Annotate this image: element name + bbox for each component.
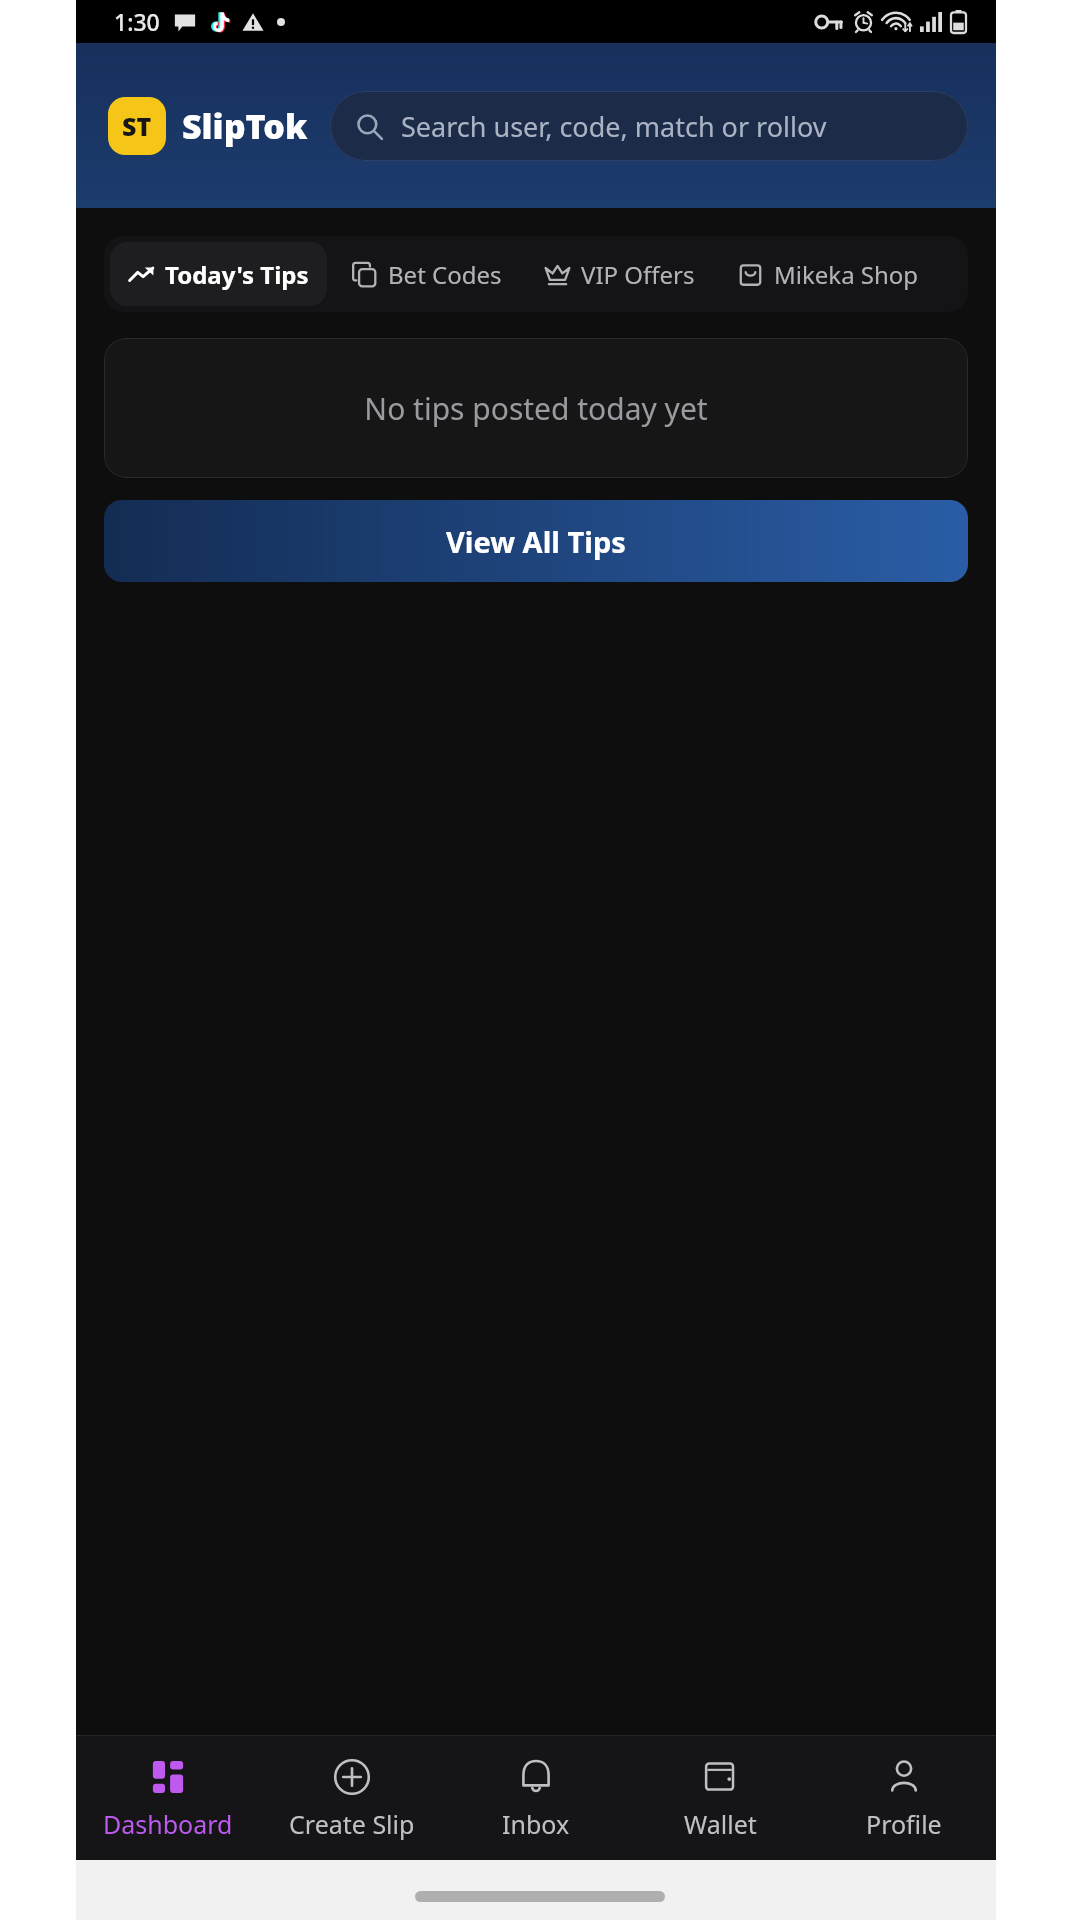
staticText: Today's Tips — [165, 258, 309, 291]
button[interactable]: Today's Tips — [110, 242, 327, 306]
staticText: Create Slip — [289, 1807, 415, 1841]
staticText: No tips posted today yet — [364, 388, 708, 429]
button[interactable]: Mikeka Shop — [719, 242, 937, 306]
staticText: ST — [122, 109, 152, 143]
staticText: Search user, code, match or rollov — [401, 108, 827, 145]
button[interactable]: Dashboard — [76, 1736, 260, 1860]
staticText: SlipTok — [182, 103, 308, 149]
button[interactable]: View All Tips — [104, 500, 968, 582]
staticText: 1:30 — [114, 6, 160, 37]
staticText: Wallet — [684, 1807, 757, 1841]
button[interactable]: Bet Codes — [333, 242, 520, 306]
button[interactable]: Profile — [812, 1736, 996, 1860]
button[interactable]: ST — [108, 97, 166, 155]
button[interactable]: VIP Offers — [526, 242, 713, 306]
button[interactable]: Search user, code, match or rollov — [330, 91, 968, 161]
button[interactable]: Inbox — [444, 1736, 628, 1860]
button[interactable]: Wallet — [628, 1736, 812, 1860]
staticText: Bet Codes — [388, 258, 502, 291]
button[interactable]: Create Slip — [260, 1736, 444, 1860]
staticText: Dashboard — [103, 1807, 233, 1841]
staticText: Inbox — [502, 1807, 570, 1841]
staticText: View All Tips — [446, 522, 626, 561]
staticText: VIP Offers — [581, 258, 695, 291]
staticText: Mikeka Shop — [774, 258, 919, 291]
staticText: Profile — [866, 1807, 942, 1841]
